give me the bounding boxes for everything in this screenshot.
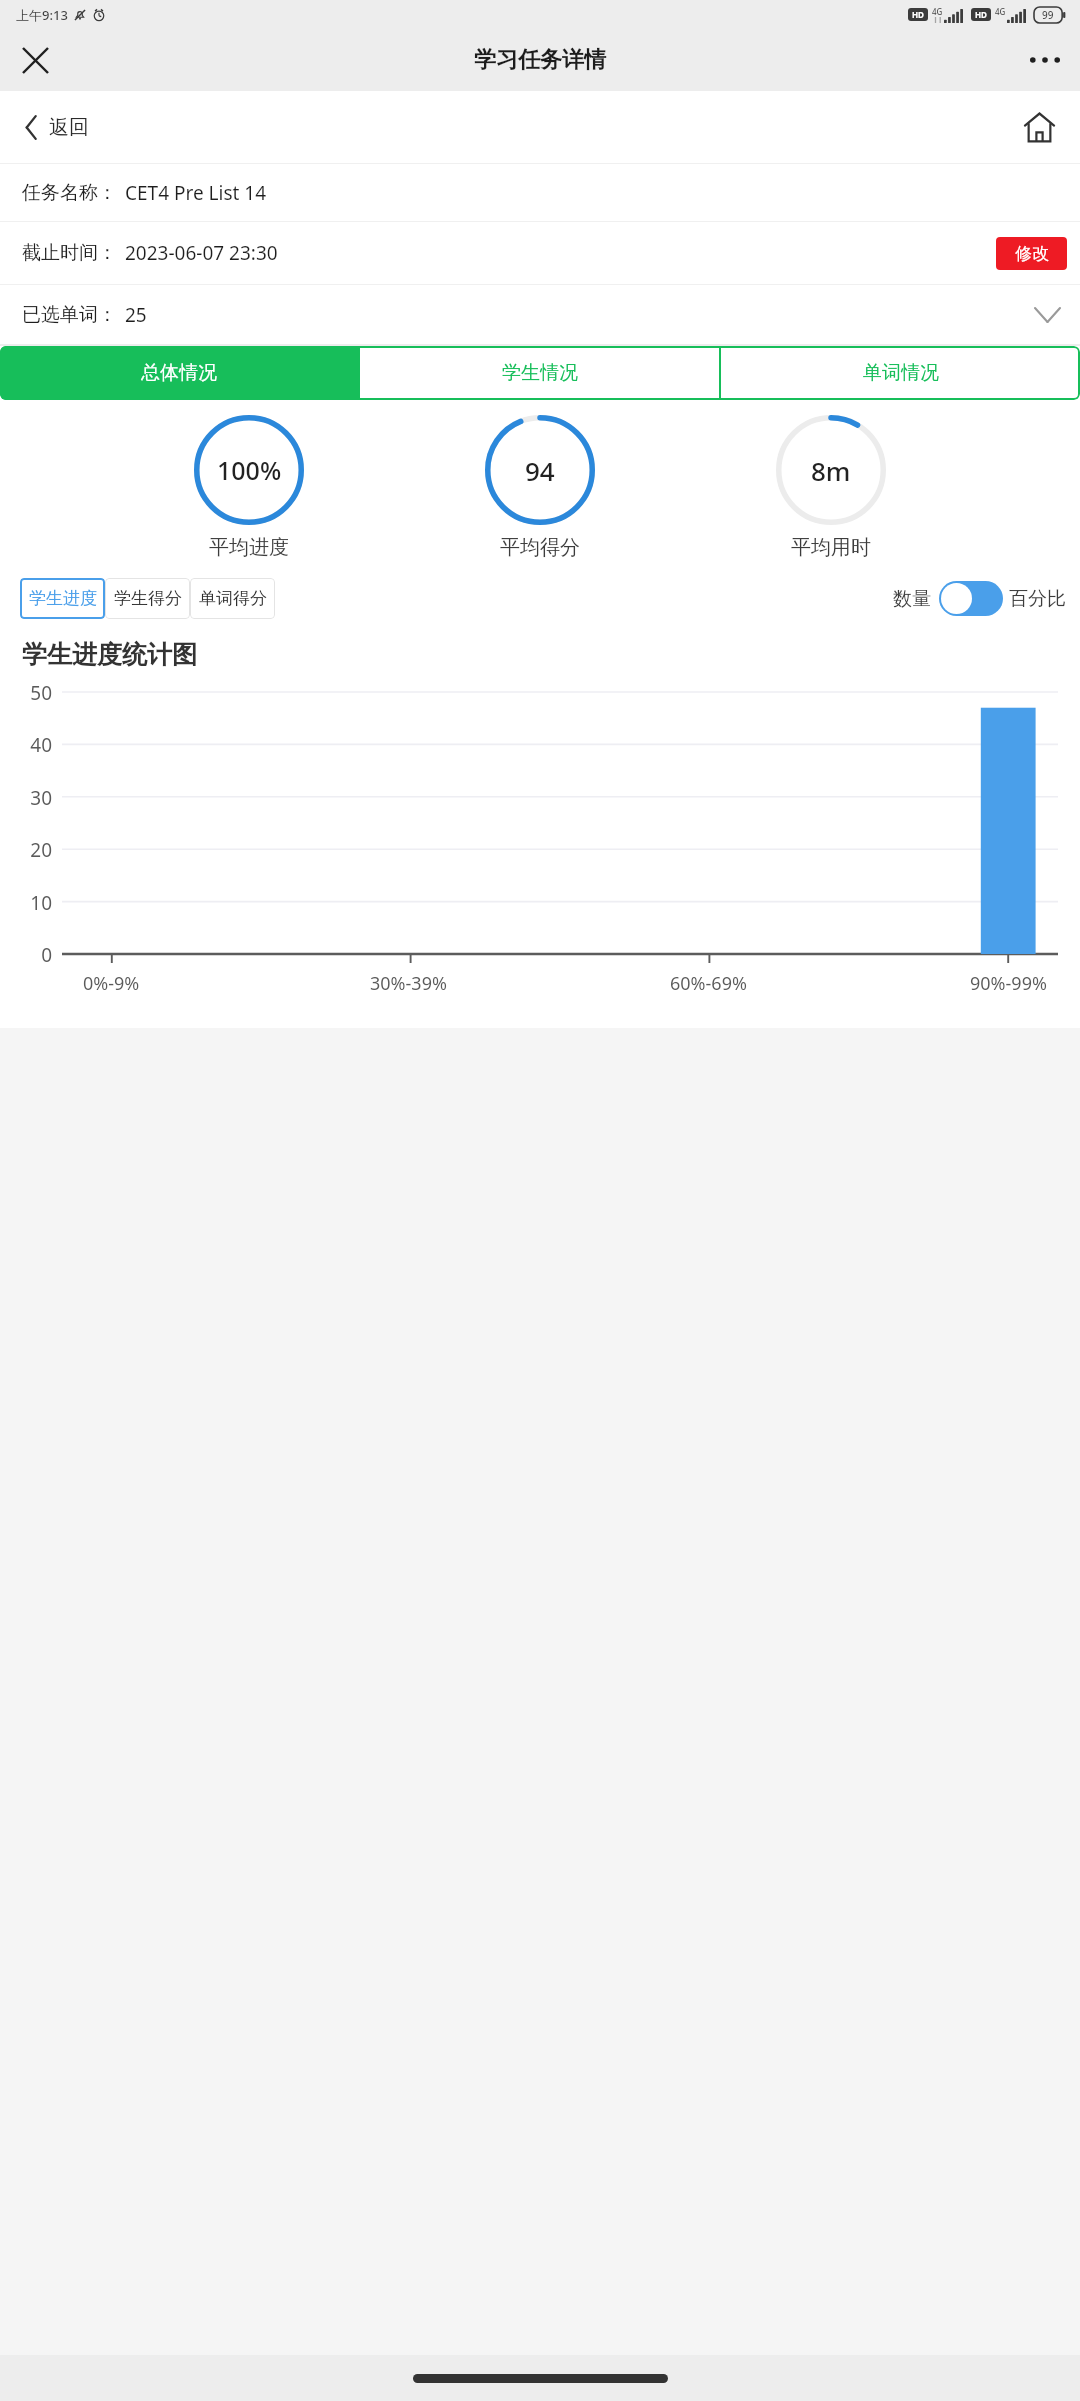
staticText: 学生情况 (502, 361, 578, 385)
staticText: 2023-06-07 23:30 (125, 240, 278, 266)
staticText: 20 (0, 837, 52, 863)
button[interactable]: Close (6, 31, 64, 89)
button[interactable]: 返回 (20, 108, 93, 147)
staticText: 50 (0, 680, 52, 706)
button[interactable]: 修改 (996, 237, 1067, 270)
staticText: 已选单词： (22, 303, 117, 327)
staticText: 上午9:13 (16, 6, 68, 24)
staticText: 30%-39% (370, 971, 447, 996)
staticText: 总体情况 (141, 361, 217, 385)
staticText: 单词得分 (199, 588, 267, 609)
staticText: 0 (0, 942, 52, 968)
staticText: 4G (932, 6, 943, 17)
staticText: 60%-69% (670, 971, 747, 996)
button[interactable]: 总体情况 (0, 346, 358, 400)
staticText: 截止时间： (22, 241, 117, 265)
staticText: 99 (1042, 8, 1054, 22)
staticText: 学生进度统计图 (22, 639, 197, 670)
staticText: HD (912, 9, 924, 20)
staticText: 10 (0, 890, 52, 916)
staticText: 90%-99% (970, 971, 1047, 996)
staticText: 百分比 (1009, 587, 1066, 611)
button[interactable]: 已选单词： (0, 285, 1080, 344)
button[interactable]: 学生得分 (105, 578, 190, 619)
staticText: 94 (525, 453, 555, 488)
staticText: 0%-9% (83, 971, 140, 996)
button[interactable]: Switch between count and percentage (939, 581, 1003, 616)
staticText: 返回 (49, 115, 89, 140)
button[interactable]: Home (1014, 102, 1064, 152)
staticText: 25 (125, 302, 147, 328)
staticText: 任务名称： (22, 181, 117, 205)
staticText: 单词情况 (863, 361, 939, 385)
staticText: 修改 (1015, 243, 1049, 264)
staticText: 学生进度 (29, 588, 97, 609)
staticText: 40 (0, 732, 52, 758)
button[interactable]: 学生情况 (360, 346, 719, 400)
staticText: 学生得分 (114, 588, 182, 609)
staticText: 8m (811, 453, 851, 488)
staticText: 4G (995, 6, 1006, 17)
staticText: HD (975, 9, 987, 20)
button[interactable]: 单词得分 (190, 578, 275, 619)
staticText: 平均进度 (209, 535, 289, 560)
button[interactable]: More options (1016, 31, 1074, 89)
button[interactable]: 学生进度 (20, 578, 105, 619)
staticText: 平均用时 (791, 535, 871, 560)
staticText: 学习任务详情 (474, 46, 606, 74)
button[interactable]: 单词情况 (721, 346, 1080, 400)
staticText: CET4 Pre List 14 (125, 180, 267, 206)
staticText: 30 (0, 785, 52, 811)
staticText: 数量 (893, 587, 931, 611)
staticText: 100% (217, 453, 282, 487)
staticText: 平均得分 (500, 535, 580, 560)
